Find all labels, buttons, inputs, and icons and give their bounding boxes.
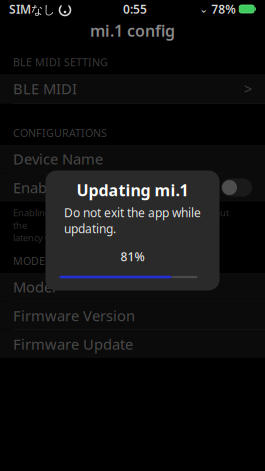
- staticText: Firmware Update: [13, 334, 133, 354]
- staticText: MODEL: [13, 254, 51, 268]
- staticText: 0:55: [123, 1, 147, 17]
- staticText: SIMなし: [9, 1, 55, 17]
- staticText: Do not exit the app while updating.: [64, 205, 201, 237]
- staticText: Device Name: [13, 149, 103, 169]
- button[interactable]: BLE MIDI: [0, 74, 265, 104]
- staticText: Updating mi.1: [76, 179, 188, 201]
- staticText: BLE MIDI SETTING: [13, 55, 108, 69]
- staticText: ⌄: [199, 3, 208, 15]
- staticText: mi.1 config: [90, 20, 175, 41]
- staticText: >: [244, 79, 252, 98]
- staticText: 81%: [120, 249, 144, 264]
- button[interactable]: Model: [0, 273, 265, 301]
- button[interactable]: Firmware Update: [0, 330, 265, 358]
- button[interactable]: Enable Timestamp: [0, 173, 265, 201]
- button[interactable]: Device Name: [0, 145, 265, 173]
- staticText: Enable Timestamp: [13, 178, 140, 197]
- staticText: Enabling timestamp improves timing accur…: [13, 206, 229, 244]
- staticText: 78%: [211, 1, 236, 17]
- button[interactable]: Firmware Version: [0, 301, 265, 330]
- staticText: CONFIGURATIONS: [13, 126, 107, 140]
- staticText: Firmware Version: [13, 306, 135, 325]
- staticText: BLE MIDI: [13, 79, 77, 98]
- staticText: Model: [13, 277, 56, 297]
